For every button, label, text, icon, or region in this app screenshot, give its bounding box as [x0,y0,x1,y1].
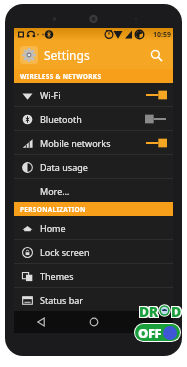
staticText: Wi-Fi [40,89,145,101]
staticText: DR [138,302,157,319]
staticText: DR [139,303,158,320]
staticText: D [170,303,180,320]
button[interactable]: Mobile networks toggle [145,136,167,150]
staticText: DR [140,301,159,318]
button[interactable]: Bluetooth [14,107,173,130]
staticText: DR [140,303,159,320]
staticText: DR [139,302,158,319]
staticText: OFF [138,324,162,341]
button[interactable]: Themes [14,264,173,287]
staticText: DR [138,301,157,318]
staticText: Home [40,222,167,234]
staticText: More… [40,185,167,197]
button[interactable]: Wi-Fi [14,83,173,106]
button[interactable]: Home [67,311,120,333]
staticText: D [170,301,180,318]
staticText: Themes [40,270,167,282]
staticText: Status bar [40,294,167,306]
staticText: D [171,302,181,319]
button[interactable]: Search [145,44,167,66]
staticText: D [172,303,182,320]
staticText: Lock screen [40,246,167,258]
staticText: DR [138,303,157,320]
staticText: 10:59 [153,30,171,40]
staticText: Bluetooth [40,113,145,125]
staticText: D [171,301,181,318]
button[interactable]: Wi-Fi toggle [145,88,167,102]
staticText: DR [140,302,159,319]
staticText: PERSONALIZATION [20,205,86,214]
staticText: Settings [44,47,145,63]
button[interactable]: Mobile networks [14,131,173,154]
button[interactable]: Status bar [14,288,173,311]
button[interactable]: Settings app icon [20,46,38,64]
button[interactable]: Recents [120,311,173,333]
staticText: D [172,301,182,318]
staticText: Mobile networks [40,137,145,149]
staticText: WIRELESS & NETWORKS [20,72,102,81]
button[interactable]: Bluetooth toggle [145,112,167,126]
button[interactable]: Home [14,216,173,239]
button[interactable]: Lock screen [14,240,173,263]
button[interactable]: Data usage [14,155,173,178]
button[interactable]: Back [14,311,67,333]
staticText: D [171,303,181,320]
button[interactable]: More… [14,179,173,202]
staticText: Data usage [40,161,167,173]
staticText: D [170,302,180,319]
staticText: DR [139,301,158,318]
staticText: D [172,302,182,319]
